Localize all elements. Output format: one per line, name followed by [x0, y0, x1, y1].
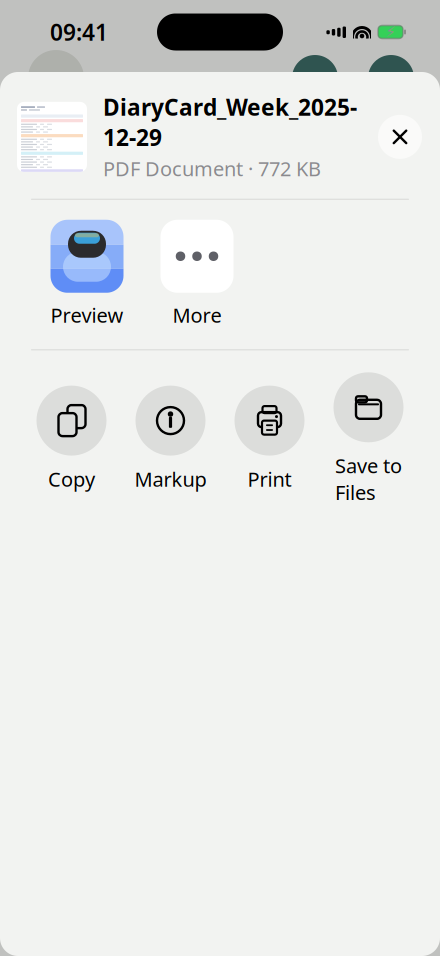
button[interactable]: Markup: [121, 386, 220, 492]
button[interactable]: Copy: [22, 386, 121, 492]
button[interactable]: More: [142, 220, 252, 328]
staticText: PDF Document · 772 KB: [103, 155, 321, 182]
staticText: Preview: [50, 302, 123, 328]
staticText: ⚡︎: [385, 24, 395, 40]
staticText: DiaryCard_Week_2025-12-29: [103, 92, 357, 152]
staticText: Markup: [134, 466, 206, 492]
button[interactable]: Save to Files: [319, 372, 418, 505]
staticText: More: [172, 302, 221, 328]
button[interactable]: Preview: [32, 220, 142, 328]
staticText: 09:41: [50, 17, 108, 47]
button[interactable]: Print: [220, 386, 319, 492]
staticText: Copy: [48, 466, 95, 492]
button[interactable]: Close: [372, 109, 428, 165]
staticText: Print: [247, 466, 291, 492]
staticText: Save to Files: [335, 452, 402, 505]
